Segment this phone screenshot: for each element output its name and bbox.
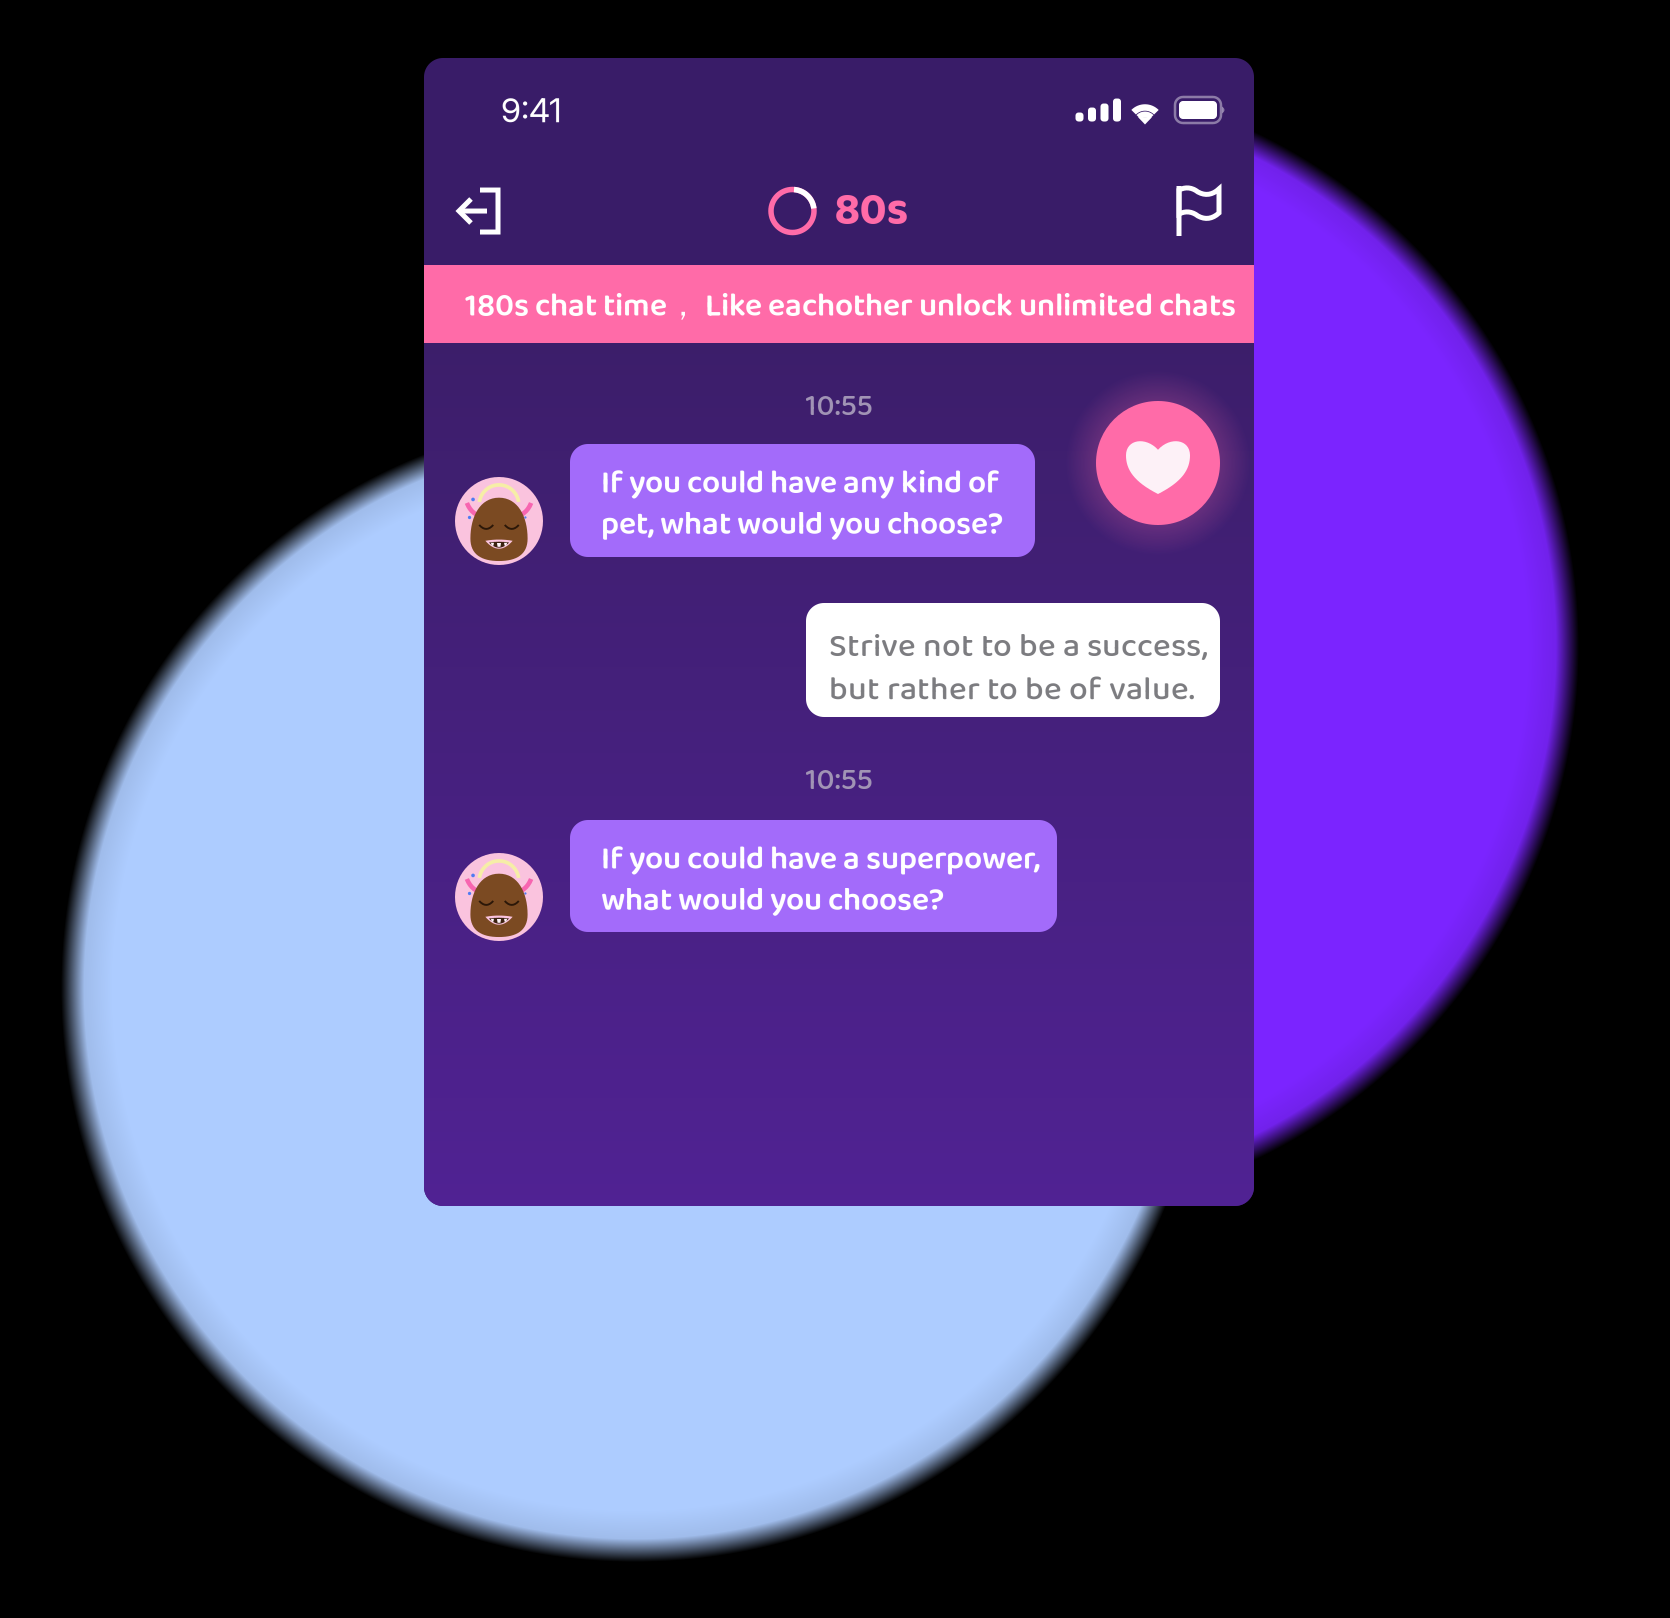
- staticText: 180s chat time， Like eachother unlock un…: [465, 281, 1236, 332]
- staticText: Strive not to be a success, but rather t…: [829, 620, 1208, 717]
- staticText: If you could have any kind of pet, what …: [601, 458, 1003, 550]
- staticText: 10:55: [805, 756, 872, 805]
- button[interactable]: Report: [1176, 184, 1223, 238]
- staticText: 10:55: [805, 382, 872, 431]
- staticText: 9:41: [501, 90, 562, 130]
- staticText: If you could have a superpower, what wou…: [601, 834, 1040, 926]
- staticText: 80s: [834, 175, 908, 247]
- button[interactable]: Leave chat: [456, 187, 501, 235]
- button[interactable]: Like: [1096, 401, 1220, 525]
